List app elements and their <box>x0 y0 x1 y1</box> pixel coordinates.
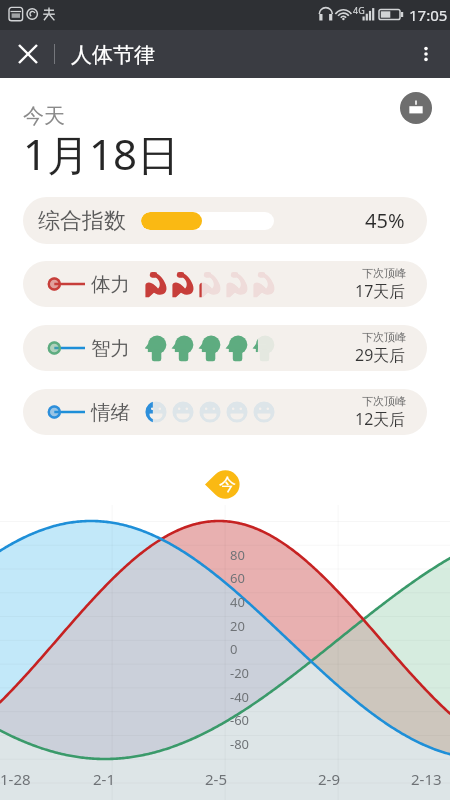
staticText: 2-13 <box>411 769 442 789</box>
staticText: 29天后 <box>355 344 406 366</box>
staticText: -40 <box>230 688 250 706</box>
staticText: 智力 <box>91 336 130 361</box>
button[interactable]: 今天 <box>205 470 240 499</box>
staticText: -80 <box>230 735 250 753</box>
staticText: 2-1 <box>93 769 115 789</box>
staticText: 80 <box>230 546 245 564</box>
button[interactable]: 情绪 <box>23 389 427 435</box>
staticText: 体力 <box>91 272 130 297</box>
button[interactable]: Birthday <box>400 92 432 124</box>
button[interactable]: 智力 <box>23 325 427 371</box>
staticText: 下次顶峰 <box>362 266 406 280</box>
staticText: 17:05 <box>409 5 448 25</box>
staticText: 45% <box>365 207 405 234</box>
staticText: 12天后 <box>355 408 406 430</box>
staticText: 今 <box>219 474 236 495</box>
staticText: 40 <box>230 593 245 611</box>
staticText: 1月18日 <box>23 125 180 182</box>
staticText: 2-9 <box>318 769 340 789</box>
staticText: 17天后 <box>355 280 406 302</box>
staticText: 2-5 <box>205 769 227 789</box>
staticText: -60 <box>230 711 250 729</box>
button[interactable]: 综合指数 <box>23 197 427 244</box>
staticText: 综合指数 <box>38 207 126 235</box>
staticText: 情绪 <box>91 400 130 425</box>
staticText: 人体节律 <box>71 42 155 68</box>
staticText: 1-28 <box>0 769 31 789</box>
staticText: 今天 <box>23 103 65 129</box>
staticText: 60 <box>230 569 245 587</box>
staticText: 4G <box>353 4 365 16</box>
staticText: 下次顶峰 <box>362 394 406 408</box>
staticText: 下次顶峰 <box>362 330 406 344</box>
staticText: 0 <box>230 640 238 658</box>
button[interactable]: 体力 <box>23 261 427 307</box>
staticText: -20 <box>230 664 250 682</box>
staticText: 20 <box>230 617 245 635</box>
button[interactable]: More options <box>402 30 450 78</box>
button[interactable]: Close <box>4 30 52 78</box>
